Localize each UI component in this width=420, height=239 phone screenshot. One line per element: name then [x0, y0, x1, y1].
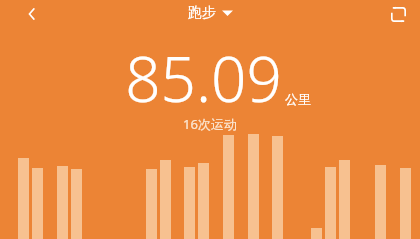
- button[interactable]: 跑步: [182, 2, 239, 24]
- staticText: 公里: [285, 91, 311, 107]
- staticText: 跑步: [188, 4, 216, 22]
- staticText: 16次运动: [183, 115, 237, 133]
- staticText: 85.09: [125, 36, 282, 120]
- button[interactable]: Back: [18, 0, 46, 28]
- button[interactable]: Sync: [384, 0, 412, 28]
